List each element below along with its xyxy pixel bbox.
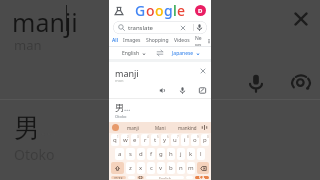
button[interactable]: Search by voice bbox=[195, 23, 204, 32]
button[interactable]: . bbox=[186, 176, 193, 179]
button[interactable]: k bbox=[187, 148, 195, 160]
button[interactable]: Listen bbox=[158, 86, 167, 95]
staticText: c bbox=[150, 164, 153, 172]
button[interactable]: n bbox=[177, 162, 185, 174]
staticText: Japanese bbox=[172, 50, 194, 57]
button[interactable]: News bbox=[195, 35, 204, 46]
button[interactable]: manji bbox=[119, 122, 147, 133]
button[interactable]: c bbox=[147, 162, 155, 174]
button[interactable]: Voice search bbox=[245, 72, 267, 94]
button[interactable]: d bbox=[137, 148, 145, 160]
button[interactable]: u bbox=[171, 134, 179, 146]
button[interactable]: j bbox=[177, 148, 185, 160]
button[interactable]: a bbox=[115, 148, 124, 160]
staticText: x bbox=[139, 164, 143, 172]
button[interactable]: p bbox=[201, 134, 209, 146]
button[interactable]: g bbox=[157, 148, 165, 160]
staticText: z bbox=[129, 164, 132, 172]
staticText: g bbox=[164, 1, 173, 20]
button[interactable]: Keyboard options bbox=[201, 124, 208, 131]
staticText: p bbox=[203, 136, 207, 144]
staticText: 5 bbox=[157, 135, 159, 139]
button[interactable]: x bbox=[137, 162, 145, 174]
button[interactable]: Close bbox=[290, 8, 312, 30]
button[interactable]: Search bbox=[195, 176, 209, 179]
staticText: q bbox=[113, 136, 117, 144]
button[interactable]: y bbox=[161, 134, 169, 146]
staticText: manji bbox=[12, 5, 78, 39]
staticText: b bbox=[169, 164, 173, 172]
button[interactable]: Backspace bbox=[197, 162, 209, 174]
staticText: 9 bbox=[197, 135, 199, 139]
staticText: k bbox=[189, 150, 193, 158]
staticText: a bbox=[118, 150, 122, 158]
staticText: l bbox=[173, 1, 177, 20]
button[interactable]: ?123 bbox=[111, 176, 126, 179]
button[interactable]: Shift bbox=[111, 162, 124, 174]
staticText: e bbox=[133, 136, 137, 144]
staticText: 4 bbox=[147, 135, 149, 139]
button[interactable]: Speak bbox=[178, 86, 187, 95]
staticText: Otoko bbox=[14, 145, 55, 164]
button[interactable]: Swap languages bbox=[155, 48, 165, 58]
button[interactable]: z bbox=[126, 162, 135, 174]
button[interactable]: o bbox=[191, 134, 199, 146]
button[interactable]: Search Labs bbox=[113, 5, 125, 17]
button[interactable]: , bbox=[128, 176, 135, 179]
button[interactable]: f bbox=[147, 148, 155, 160]
button[interactable]: h bbox=[167, 148, 175, 160]
staticText: s bbox=[129, 150, 132, 158]
button[interactable]: m bbox=[187, 162, 195, 174]
button[interactable]: Clear text bbox=[199, 67, 207, 75]
button[interactable]: Emoji bbox=[137, 176, 144, 179]
button[interactable]: All bbox=[112, 37, 118, 44]
button[interactable]: i bbox=[181, 134, 189, 146]
staticText: 1 bbox=[117, 135, 119, 139]
button[interactable]: 男 bbox=[109, 99, 211, 122]
button[interactable]: Images bbox=[123, 37, 141, 44]
staticText: o bbox=[193, 136, 197, 144]
button[interactable]: Handwrite bbox=[198, 86, 207, 95]
button[interactable]: q bbox=[111, 134, 119, 146]
staticText: 7 bbox=[177, 135, 179, 139]
button[interactable]: Mani bbox=[147, 122, 174, 133]
staticText: … bbox=[124, 102, 131, 113]
staticText: ?123 bbox=[114, 176, 123, 179]
button[interactable]: b bbox=[167, 162, 175, 174]
button[interactable]: Shopping bbox=[146, 37, 169, 44]
button[interactable]: l bbox=[197, 148, 205, 160]
staticText: mankind bbox=[178, 125, 197, 131]
staticText: i bbox=[184, 136, 186, 144]
staticText: English bbox=[122, 50, 140, 57]
staticText: o bbox=[146, 1, 155, 20]
button[interactable]: translate bbox=[113, 21, 207, 34]
staticText: l bbox=[200, 150, 202, 158]
button[interactable]: t bbox=[151, 134, 159, 146]
button[interactable]: Account bbox=[195, 5, 206, 16]
button[interactable]: English bbox=[146, 176, 184, 179]
button[interactable]: r bbox=[141, 134, 149, 146]
staticText: manji bbox=[127, 125, 139, 131]
button[interactable]: mankind bbox=[174, 122, 201, 133]
staticText: Shopping bbox=[146, 37, 169, 44]
button[interactable]: v bbox=[157, 162, 165, 174]
staticText: y bbox=[163, 136, 167, 144]
staticText: translate bbox=[128, 24, 153, 32]
button[interactable]: Clear search bbox=[179, 24, 187, 32]
button[interactable]: English bbox=[113, 47, 155, 59]
button[interactable]: Japanese bbox=[165, 47, 207, 59]
staticText: Videos bbox=[174, 37, 190, 44]
button[interactable]: Videos bbox=[174, 37, 190, 44]
staticText: 0 bbox=[207, 135, 209, 139]
staticText: e bbox=[177, 1, 186, 20]
button[interactable]: Google Lens bbox=[290, 72, 312, 94]
staticText: G bbox=[135, 1, 146, 20]
button[interactable]: Google bbox=[112, 124, 119, 131]
staticText: D bbox=[198, 7, 203, 15]
button[interactable]: manji bbox=[109, 62, 211, 98]
button[interactable]: w bbox=[121, 134, 129, 146]
button[interactable]: e bbox=[131, 134, 139, 146]
button[interactable]: s bbox=[126, 148, 135, 160]
